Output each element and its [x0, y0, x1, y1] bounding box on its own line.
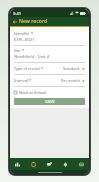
button[interactable]: More	[73, 158, 89, 170]
button[interactable]: Type of record	[10, 63, 89, 75]
button[interactable]: Interval	[10, 75, 89, 87]
button[interactable]: Messages	[41, 158, 57, 170]
staticText: *	[41, 66, 44, 71]
button[interactable]: Alerts	[57, 158, 73, 170]
staticText: Northfield · Unit 4	[14, 54, 50, 60]
staticText: Per month	[61, 78, 80, 83]
staticText: *	[22, 48, 24, 53]
staticText: EXPL-0021	[14, 37, 35, 43]
button[interactable]: Mark as default	[10, 87, 89, 97]
staticText: SAVE	[45, 99, 55, 104]
button[interactable]: Site	[10, 46, 89, 63]
staticText: Site	[14, 48, 21, 53]
button[interactable]: Back	[10, 17, 19, 26]
staticText: Identifier	[14, 31, 30, 36]
staticText: *	[29, 78, 32, 83]
staticText: Standard	[63, 66, 80, 71]
staticText: *	[31, 31, 33, 36]
staticText: New record	[19, 18, 48, 25]
button[interactable]: Identifier	[10, 29, 89, 46]
staticText: 9:41	[13, 11, 21, 16]
staticText: Interval	[14, 78, 28, 83]
button[interactable]: Records	[25, 158, 41, 170]
staticText: Type of record	[14, 66, 40, 71]
staticText: Mark as default	[19, 90, 47, 95]
button[interactable]: SAVE	[14, 98, 85, 105]
button[interactable]: Dashboard	[10, 158, 25, 170]
